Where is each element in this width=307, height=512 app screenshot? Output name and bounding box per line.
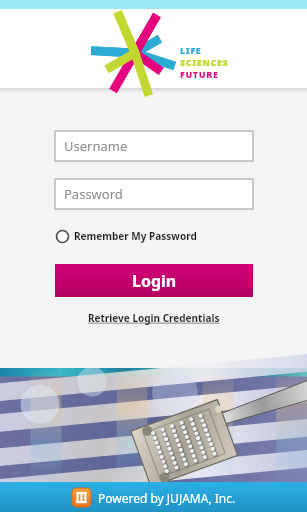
staticText: LIFE — [180, 44, 202, 56]
button[interactable]: Login — [55, 264, 253, 297]
staticText: FUTURE — [180, 68, 219, 80]
staticText: Login — [132, 270, 177, 292]
button[interactable]: Password — [55, 179, 253, 209]
staticText: Password — [64, 185, 123, 203]
button[interactable]: Remember My Password — [55, 226, 253, 246]
button[interactable]: Retrieve Login Credentials — [85, 308, 223, 328]
staticText: Powered by JUJAMA, Inc. — [98, 490, 236, 506]
button[interactable]: Username — [55, 131, 253, 161]
staticText: Retrieve Login Credentials — [88, 311, 220, 325]
other: JUJAMA — [72, 488, 91, 507]
button[interactable]: JUJAMA — [0, 482, 307, 512]
staticText: SCIENCES — [180, 56, 229, 68]
staticText: Remember My Password — [74, 229, 197, 243]
staticText: Username — [64, 137, 128, 155]
